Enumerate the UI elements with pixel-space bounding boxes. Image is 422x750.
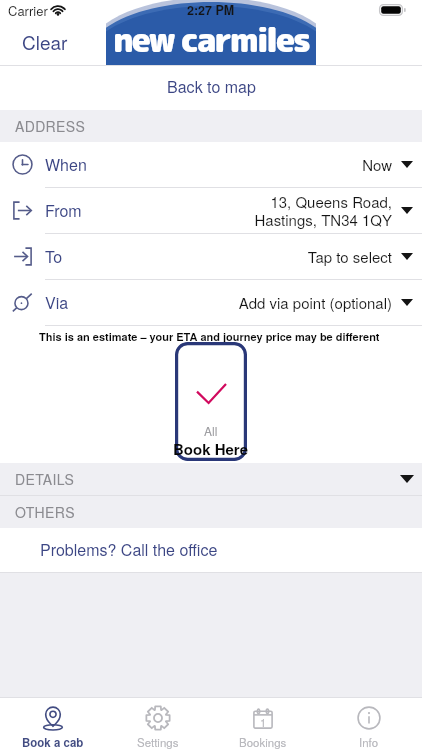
staticText: From xyxy=(45,199,82,222)
button[interactable]: Book a cab xyxy=(0,698,105,750)
staticText: Info xyxy=(359,734,379,750)
staticText: Now xyxy=(362,154,392,175)
button[interactable]: To xyxy=(0,234,422,279)
button[interactable]: ADDRESS xyxy=(0,110,422,142)
staticText: 13, Queens Road, Hastings, TN34 1QY xyxy=(254,191,392,230)
button[interactable]: Via xyxy=(0,280,422,325)
staticText: Carrier xyxy=(8,1,48,20)
button[interactable]: Back to map xyxy=(151,67,272,106)
staticText: This is an estimate – your ETA and journ… xyxy=(39,329,380,345)
staticText: ADDRESS xyxy=(15,116,86,136)
staticText: Book Here xyxy=(173,438,249,459)
staticText: Problems? Call the office xyxy=(40,538,218,561)
staticText: 1 xyxy=(260,714,267,730)
staticText: 2:27 PM xyxy=(187,1,235,19)
staticText: DETAILS xyxy=(15,469,75,489)
staticText: To xyxy=(45,245,63,268)
staticText: Tap to select xyxy=(307,246,392,267)
staticText: Book a cab xyxy=(22,734,84,750)
button[interactable]: All xyxy=(175,342,247,461)
button[interactable]: Clear xyxy=(0,20,84,63)
staticText: new carmiles xyxy=(113,17,309,63)
staticText: Settings xyxy=(137,734,179,750)
staticText: Bookings xyxy=(239,734,287,750)
staticText: OTHERS xyxy=(15,502,75,522)
staticText: All xyxy=(204,422,218,439)
button[interactable]: new carmiles logo xyxy=(106,3,316,65)
staticText: Clear xyxy=(22,28,68,55)
staticText: When xyxy=(45,153,87,176)
button[interactable]: DETAILS xyxy=(0,463,422,495)
button[interactable]: Problems? Call the office xyxy=(0,528,422,572)
button[interactable]: From xyxy=(0,188,422,233)
button[interactable]: When xyxy=(0,142,422,187)
button[interactable]: 1 xyxy=(210,698,316,750)
staticText: Via xyxy=(45,291,69,314)
button[interactable]: Info xyxy=(316,698,422,750)
staticText: Add via point (optional) xyxy=(238,292,392,313)
button[interactable]: OTHERS xyxy=(0,496,422,528)
staticText: Back to map xyxy=(167,75,256,98)
button[interactable]: Settings xyxy=(105,698,210,750)
